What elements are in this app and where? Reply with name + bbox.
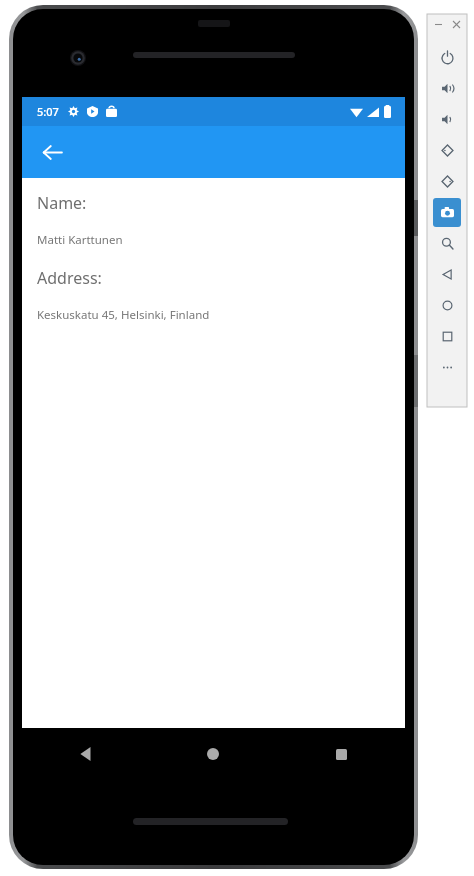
staticText: Keskuskatu 45, Helsinki, Finland: [37, 307, 210, 323]
button[interactable]: Rotate left: [433, 136, 461, 165]
button[interactable]: Rotate right: [433, 167, 461, 196]
staticText: Address:: [37, 267, 102, 289]
button[interactable]: Overview: [433, 322, 461, 351]
button[interactable]: Zoom: [433, 229, 461, 258]
button[interactable]: Close: [449, 17, 463, 31]
button[interactable]: Recent apps: [277, 728, 405, 780]
staticText: 5:07: [37, 104, 59, 119]
button[interactable]: Power: [433, 43, 461, 72]
button[interactable]: Take screenshot: [433, 198, 461, 227]
button[interactable]: Back: [22, 728, 149, 780]
button[interactable]: Back: [33, 133, 71, 171]
staticText: Name:: [37, 192, 87, 214]
button[interactable]: Volume down: [433, 105, 461, 134]
button[interactable]: Home: [149, 728, 277, 780]
button[interactable]: Volume up: [433, 74, 461, 103]
button[interactable]: Back: [433, 260, 461, 289]
staticText: Matti Karttunen: [37, 232, 123, 248]
button[interactable]: Home: [433, 291, 461, 320]
button[interactable]: Minimize: [431, 17, 445, 31]
button[interactable]: More: [433, 353, 461, 382]
